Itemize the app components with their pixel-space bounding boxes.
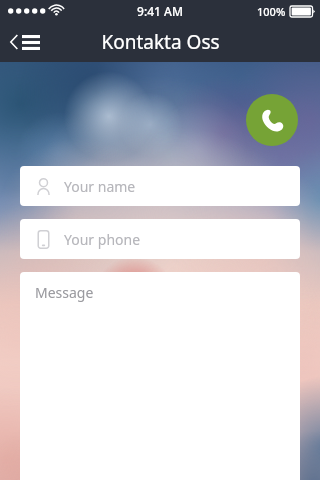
button[interactable]: Message [20, 272, 300, 480]
button[interactable]: Your phone [20, 219, 300, 259]
staticText: 100% [257, 4, 286, 19]
staticText: 9:41 AM [137, 3, 183, 19]
button[interactable]: Your name [20, 166, 300, 206]
staticText: Message [35, 283, 94, 302]
staticText: Your name [64, 177, 136, 196]
button[interactable]: Back and menu [0, 22, 52, 62]
staticText: Kontakta Oss [101, 29, 220, 55]
staticText: Your phone [64, 230, 141, 249]
button[interactable]: Call [246, 94, 298, 146]
